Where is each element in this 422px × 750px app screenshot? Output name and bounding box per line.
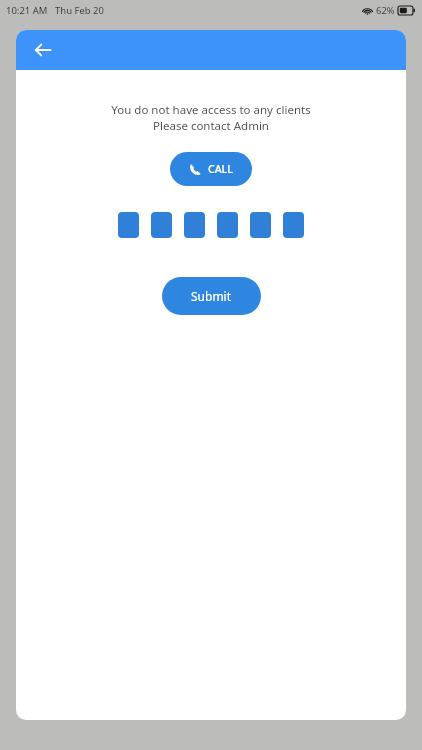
button[interactable]: OTP digit field [184, 212, 205, 238]
staticText: 62% [376, 4, 395, 17]
staticText: Submit [191, 288, 232, 304]
button[interactable]: CALL [170, 152, 252, 186]
button[interactable]: OTP digit field [250, 212, 271, 238]
button[interactable]: Back [26, 33, 60, 67]
button[interactable]: OTP digit field [151, 212, 172, 238]
button[interactable]: OTP digit field [118, 212, 139, 238]
staticText: 10:21 AM [6, 4, 48, 17]
staticText: You do not have access to any clients Pl… [111, 102, 311, 133]
staticText: CALL [208, 162, 233, 176]
button[interactable]: Submit [162, 277, 261, 315]
staticText: Thu Feb 20 [55, 4, 104, 17]
button[interactable]: OTP digit field [283, 212, 304, 238]
button[interactable]: OTP digit field [217, 212, 238, 238]
